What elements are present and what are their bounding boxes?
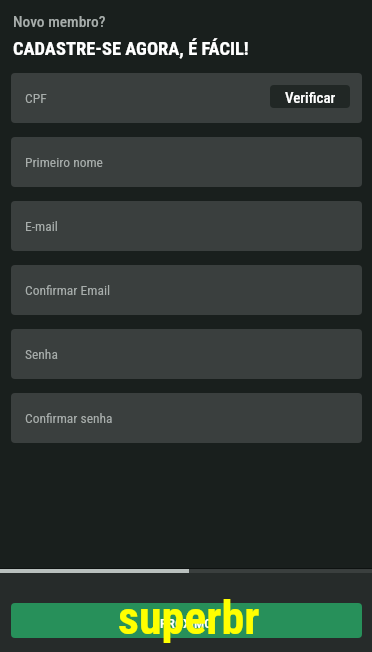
- button[interactable]: E-mail: [11, 201, 362, 251]
- staticText: Verificar: [285, 89, 336, 107]
- staticText: Senha: [25, 346, 58, 362]
- staticText: E-mail: [25, 218, 58, 234]
- staticText: Primeiro nome: [25, 154, 103, 170]
- staticText: Confirmar senha: [25, 410, 113, 426]
- button[interactable]: PRÓXIMO: [11, 603, 362, 638]
- button[interactable]: Confirmar senha: [11, 393, 362, 443]
- staticText: Novo membro?: [13, 13, 106, 31]
- button[interactable]: Confirmar Email: [11, 265, 362, 315]
- staticText: CADASTRE-SE AGORA, É FÁCIL!: [13, 38, 249, 60]
- staticText: Confirmar Email: [25, 282, 111, 298]
- staticText: superbr: [118, 591, 260, 645]
- staticText: PRÓXIMO: [160, 615, 213, 631]
- staticText: CPF: [25, 90, 47, 106]
- button[interactable]: Senha: [11, 329, 362, 379]
- button[interactable]: Verificar: [270, 85, 350, 108]
- button[interactable]: Primeiro nome: [11, 137, 362, 187]
- button[interactable]: CPF: [11, 73, 362, 123]
